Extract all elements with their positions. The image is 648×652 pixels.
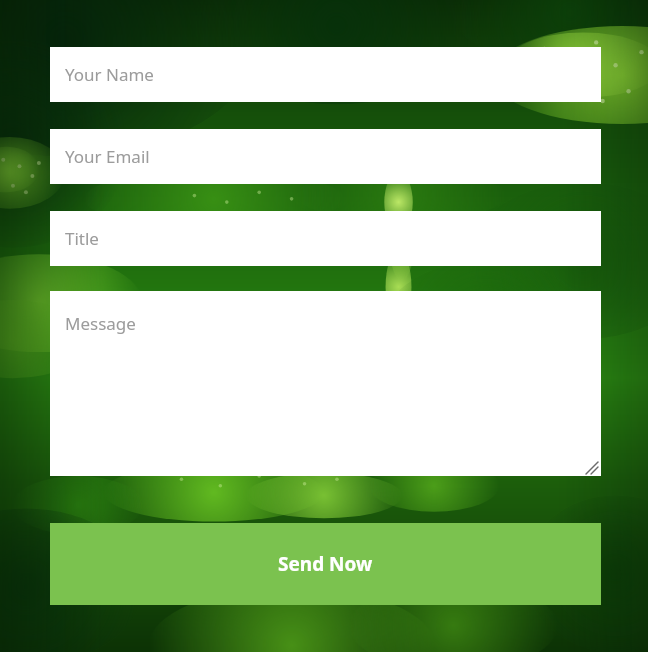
staticText: Your Name bbox=[65, 63, 154, 86]
button[interactable]: Your Email bbox=[50, 129, 601, 184]
staticText: Message bbox=[65, 312, 136, 335]
staticText: Title bbox=[65, 227, 99, 250]
button[interactable]: Your Name bbox=[50, 47, 601, 102]
button[interactable]: Send Now bbox=[50, 523, 601, 605]
staticText: Send Now bbox=[278, 551, 373, 577]
button[interactable]: Title bbox=[50, 211, 601, 266]
button[interactable]: Message bbox=[50, 291, 601, 476]
staticText: Your Email bbox=[65, 145, 150, 168]
